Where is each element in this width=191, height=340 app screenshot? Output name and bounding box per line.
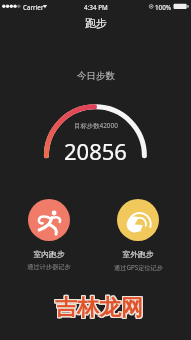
- staticText: 20856: [64, 136, 127, 166]
- other: 室外跑步: [117, 199, 159, 241]
- staticText: 吉林龙网: [55, 293, 143, 321]
- button[interactable]: 室外跑步: [95, 199, 181, 271]
- staticText: 今日步数: [77, 70, 115, 82]
- staticText: 吉林龙网: [56, 295, 144, 323]
- staticText: 室内跑步: [33, 249, 65, 259]
- staticText: 吉林龙网: [54, 293, 142, 321]
- staticText: 通过计步器记步: [27, 263, 71, 271]
- staticText: Carrier: [23, 3, 44, 12]
- staticText: 吉林龙网: [54, 295, 142, 323]
- staticText: 吉林龙网: [55, 295, 143, 323]
- staticText: 吉林龙网: [56, 294, 144, 322]
- other: 室内跑步: [28, 199, 70, 241]
- staticText: 室外跑步: [122, 249, 154, 259]
- staticText: 4:34 PM: [84, 3, 108, 12]
- staticText: 通过GPS定位记步: [114, 263, 163, 271]
- staticText: 目标步数42000: [74, 121, 118, 130]
- staticText: 吉林龙网: [55, 294, 143, 322]
- staticText: 吉林龙网: [56, 293, 144, 321]
- button[interactable]: 室内跑步: [6, 199, 92, 271]
- staticText: 吉林龙网: [54, 294, 142, 322]
- staticText: 100%: [155, 3, 172, 12]
- staticText: 跑步: [85, 16, 107, 30]
